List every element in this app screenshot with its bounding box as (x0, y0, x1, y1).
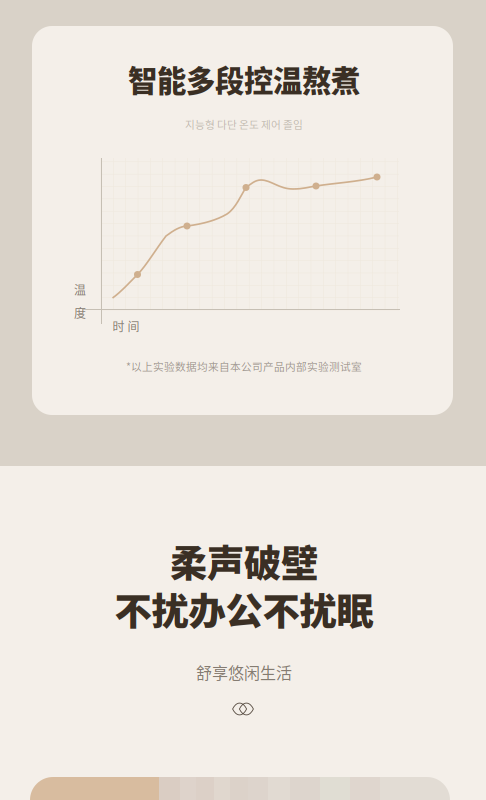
staticText: 智能多段控温熬煮 (128, 58, 360, 100)
staticText: 지능형 다단 온도 제어 졸임 (185, 116, 303, 132)
staticText: 柔声破壁 (170, 534, 318, 588)
staticText: *以上实验数据均来自本公司产品内部实验测试室 (126, 358, 362, 374)
staticText: 舒享悠闲生活 (196, 660, 292, 684)
staticText: 时 间 (112, 317, 139, 335)
staticText: 温 (74, 281, 86, 298)
staticText: 度 (74, 304, 86, 321)
staticText: 不扰办公不扰眠 (114, 582, 373, 636)
